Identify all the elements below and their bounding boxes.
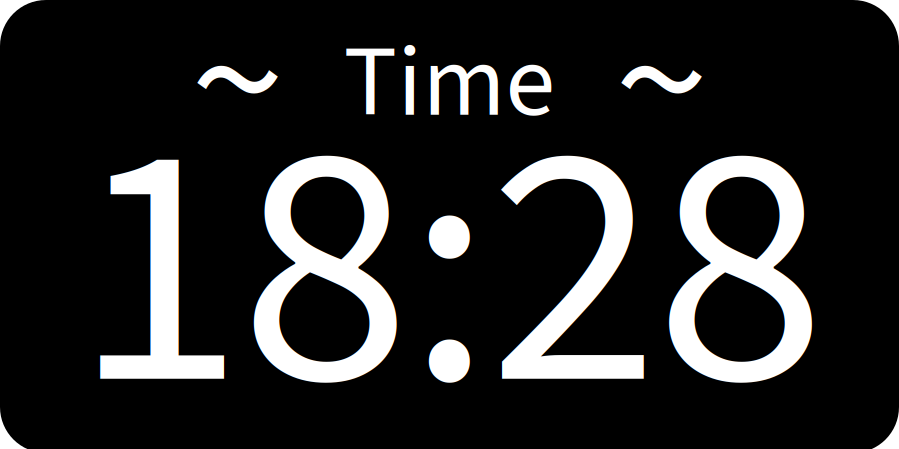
staticText: 18:28 bbox=[73, 27, 826, 449]
staticText: ~ bbox=[190, 0, 284, 218]
staticText: Time bbox=[343, 12, 555, 155]
staticText: ~ bbox=[614, 0, 708, 218]
